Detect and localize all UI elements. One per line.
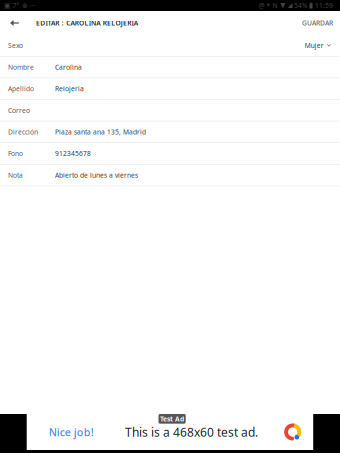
staticText: Carolina (55, 63, 82, 72)
staticText: Test Ad (160, 414, 184, 423)
button[interactable]: Back (0, 11, 19, 35)
staticText: Correo (8, 106, 30, 115)
staticText: ⊗ (22, 2, 28, 9)
staticText: Nice job! (49, 425, 94, 439)
staticText: Nombre (8, 63, 34, 72)
staticText: Mujer (305, 41, 324, 50)
staticText: Sexo (8, 41, 23, 50)
staticText: This is a 468x60 test ad. (125, 424, 258, 440)
button[interactable]: Nota (0, 165, 340, 186)
staticText: * (266, 1, 270, 10)
staticText: GUARDAR (302, 19, 333, 27)
button[interactable]: Nice job! (27, 414, 313, 450)
staticText: Fono (8, 149, 23, 158)
button[interactable]: Sexo (0, 35, 340, 56)
staticText: Relojeria (55, 84, 84, 93)
button[interactable]: Apellido (0, 78, 340, 99)
staticText: 7° (12, 1, 19, 10)
staticText: ··· (29, 1, 35, 10)
button[interactable]: Nombre (0, 57, 340, 78)
staticText: Plaza santa ana 135, Madrid (55, 127, 146, 136)
button[interactable]: Correo (0, 100, 340, 121)
staticText: EDITAR : CAROLINA RELOJERIA (36, 19, 138, 27)
staticText: Apellido (8, 84, 34, 93)
staticText: Nota (8, 171, 23, 180)
staticText: Dirección (8, 127, 38, 136)
staticText: 54% (294, 1, 308, 10)
staticText: @ (258, 1, 264, 10)
button[interactable]: GUARDAR (296, 11, 339, 35)
staticText: ▣ (4, 2, 10, 9)
staticText: 912345678 (55, 149, 91, 158)
button[interactable]: Fono (0, 143, 340, 164)
button[interactable]: Dirección (0, 121, 340, 142)
staticText: 11:59 (315, 1, 333, 10)
staticText: Abierto de lunes a viernes (55, 171, 138, 180)
staticText: N (272, 1, 277, 10)
